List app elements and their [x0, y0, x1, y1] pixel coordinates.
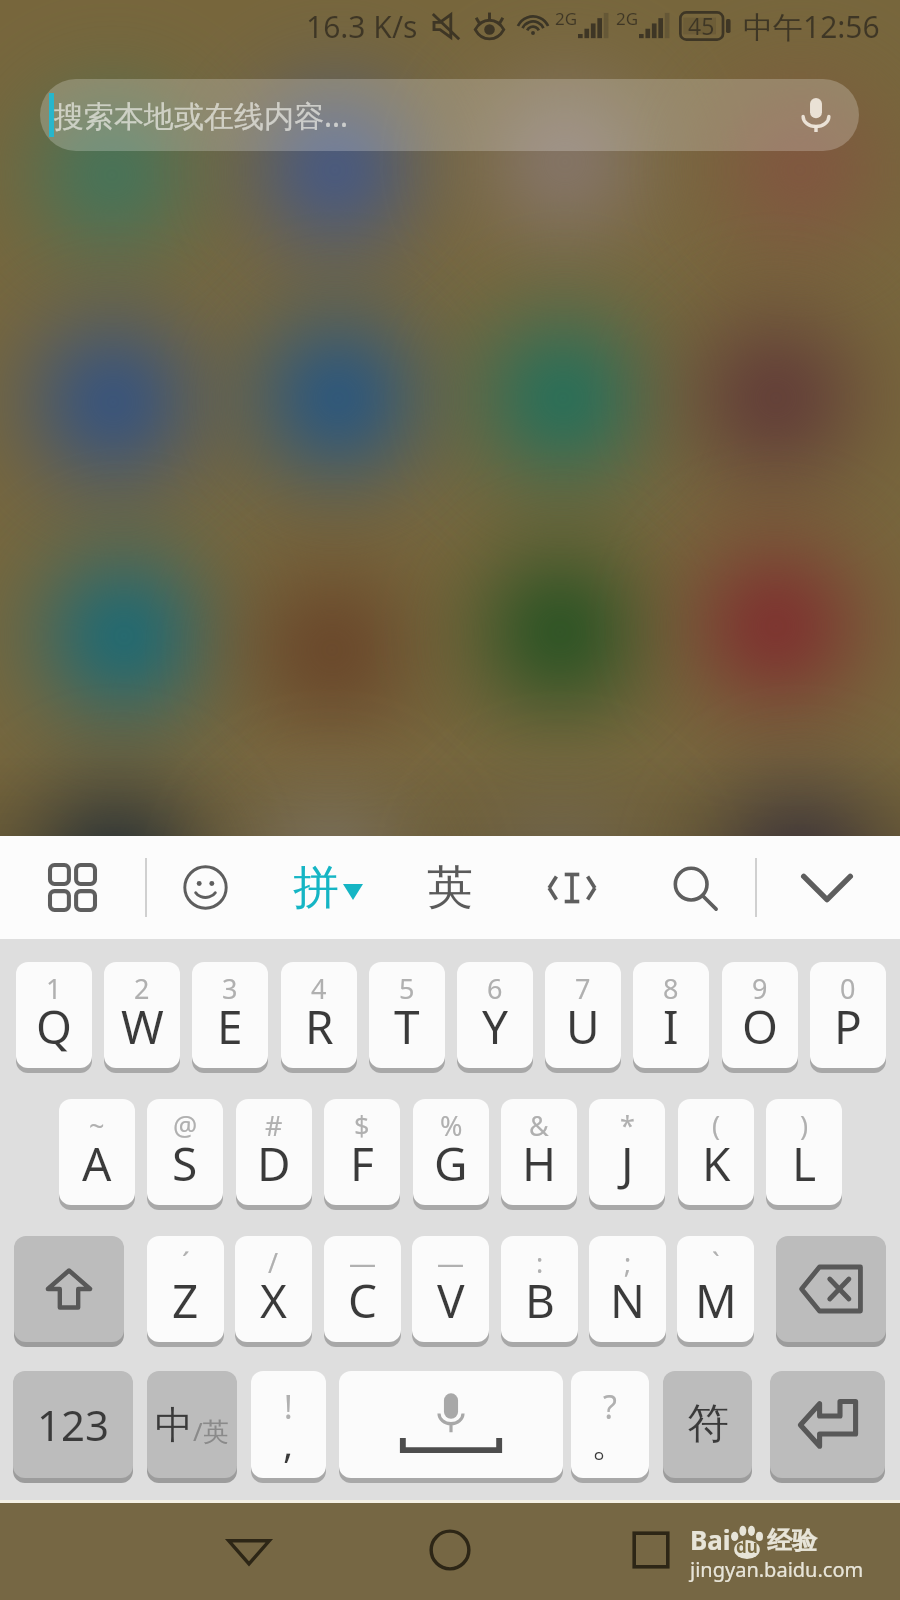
staticText: 8	[663, 970, 679, 1007]
button[interactable]: :	[501, 1236, 578, 1342]
staticText: 45	[688, 10, 715, 40]
staticText: (	[712, 1107, 721, 1144]
staticText: ,	[283, 1417, 294, 1469]
button[interactable]: 搜索本地或在线内容...	[40, 79, 859, 151]
staticText: 。	[591, 1419, 629, 1467]
button[interactable]: ;	[589, 1236, 666, 1342]
staticText: X	[260, 1269, 287, 1332]
button[interactable]: Hide keyboard	[754, 836, 900, 939]
staticText: A	[82, 1132, 112, 1195]
button[interactable]: ?	[571, 1371, 649, 1478]
button[interactable]: 英	[394, 836, 506, 939]
button[interactable]: 3	[192, 962, 268, 1068]
staticText: 1	[46, 970, 62, 1007]
button[interactable]: 0	[810, 962, 886, 1068]
staticText: :	[536, 1244, 544, 1281]
staticText: 搜索本地或在线内容...	[54, 95, 349, 136]
button[interactable]: /	[235, 1236, 312, 1342]
staticText: 中午12:56	[743, 6, 880, 47]
button[interactable]: Voice search	[787, 86, 845, 144]
staticText: R	[305, 995, 334, 1058]
button[interactable]: 4	[281, 962, 357, 1068]
button[interactable]: Back	[199, 1500, 299, 1600]
staticText: 经验	[767, 1525, 817, 1556]
staticText: —	[349, 1244, 376, 1281]
staticText: V	[437, 1269, 465, 1332]
staticText: 2	[134, 970, 150, 1007]
button[interactable]: Home	[400, 1500, 500, 1600]
button[interactable]: 9	[722, 962, 798, 1068]
staticText: Bai	[690, 1522, 731, 1557]
staticText: 123	[37, 1396, 110, 1453]
staticText: U	[566, 995, 600, 1058]
staticText: 英	[427, 859, 473, 917]
staticText: /英	[193, 1413, 229, 1449]
button[interactable]: &	[501, 1099, 577, 1205]
button[interactable]: 中	[147, 1371, 237, 1478]
button[interactable]: )	[766, 1099, 842, 1205]
staticText: Q	[36, 995, 72, 1058]
staticText: G	[434, 1132, 468, 1195]
button[interactable]: 5	[369, 962, 445, 1068]
staticText: 6	[487, 970, 503, 1007]
button[interactable]: 1	[16, 962, 92, 1068]
button[interactable]: !	[251, 1371, 326, 1478]
button[interactable]: 2	[104, 962, 180, 1068]
staticText: du	[736, 1535, 758, 1558]
staticText: T	[394, 995, 420, 1058]
staticText: ~	[89, 1107, 105, 1144]
staticText: O	[742, 995, 778, 1058]
staticText: C	[348, 1269, 378, 1332]
staticText: &	[529, 1107, 549, 1144]
staticText: S	[172, 1132, 198, 1195]
staticText: N	[610, 1269, 645, 1332]
button[interactable]: —	[412, 1236, 489, 1342]
staticText: D	[257, 1132, 291, 1195]
staticText: %	[440, 1107, 463, 1144]
button[interactable]: $	[324, 1099, 400, 1205]
button[interactable]: *	[589, 1099, 665, 1205]
button[interactable]	[770, 1371, 885, 1478]
button[interactable]: (	[678, 1099, 754, 1205]
button[interactable]: ~	[59, 1099, 135, 1205]
staticText: )	[800, 1107, 809, 1144]
staticText: Z	[172, 1269, 199, 1332]
staticText: L	[792, 1132, 817, 1195]
button[interactable]: 7	[545, 962, 621, 1068]
staticText: W	[121, 995, 164, 1058]
staticText: 4	[311, 970, 327, 1007]
button[interactable]: 6	[457, 962, 533, 1068]
button[interactable]: Move cursor	[512, 836, 632, 939]
button[interactable]: @	[147, 1099, 223, 1205]
staticText: ´	[182, 1244, 190, 1281]
staticText: 3	[222, 970, 238, 1007]
button[interactable]: #	[236, 1099, 312, 1205]
button[interactable]: 123	[13, 1371, 133, 1478]
staticText: Y	[482, 995, 509, 1058]
button[interactable]: ´	[147, 1236, 224, 1342]
button[interactable]: %	[413, 1099, 489, 1205]
button[interactable]: `	[677, 1236, 754, 1342]
button[interactable]: 8	[633, 962, 709, 1068]
button[interactable]: 拼	[268, 836, 388, 939]
staticText: @	[173, 1107, 198, 1144]
button[interactable]: Search	[636, 836, 754, 939]
staticText: /	[268, 1244, 279, 1281]
button[interactable]: Keyboard layouts	[0, 836, 145, 939]
staticText: F	[350, 1132, 374, 1195]
button[interactable]: Recents	[601, 1500, 701, 1600]
staticText: K	[702, 1132, 731, 1195]
button[interactable]: Emoji	[146, 836, 264, 939]
button[interactable]	[14, 1236, 124, 1342]
staticText: J	[621, 1132, 634, 1195]
staticText: 中	[155, 1401, 193, 1449]
staticText: —	[437, 1244, 464, 1281]
staticText: 16.3 K/s	[306, 6, 418, 47]
staticText: M	[695, 1269, 737, 1332]
button[interactable]: 符	[663, 1371, 752, 1478]
staticText: B	[525, 1269, 555, 1332]
button[interactable]	[339, 1371, 563, 1478]
button[interactable]: —	[324, 1236, 401, 1342]
staticText: 符	[687, 1398, 729, 1451]
button[interactable]	[776, 1236, 886, 1342]
